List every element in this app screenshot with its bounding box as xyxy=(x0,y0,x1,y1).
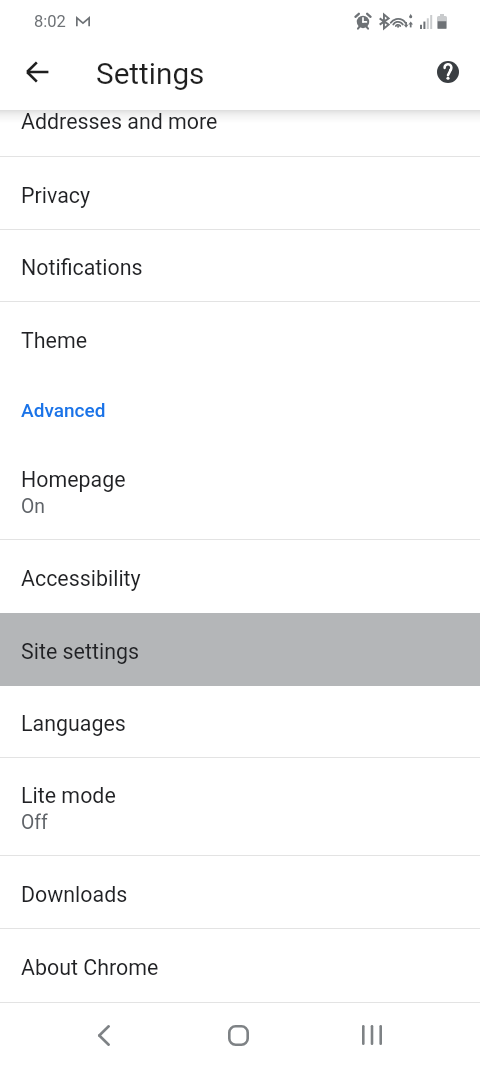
staticText: About Chrome xyxy=(21,955,159,980)
button[interactable]: Recent apps xyxy=(324,1003,420,1067)
staticText: Privacy xyxy=(21,183,91,208)
button[interactable]: Advanced xyxy=(0,374,480,442)
button[interactable]: Downloads xyxy=(0,856,480,928)
button[interactable]: About Chrome xyxy=(0,929,480,1002)
button[interactable]: Back xyxy=(13,48,61,96)
staticText: Site settings xyxy=(21,639,139,664)
staticText: Theme xyxy=(21,328,87,353)
staticText: On xyxy=(21,495,45,518)
staticText: Homepage xyxy=(21,467,126,492)
staticText: Addresses and more xyxy=(21,109,218,134)
staticText: 8:02 xyxy=(34,12,66,31)
button[interactable]: Back xyxy=(56,1003,152,1067)
staticText: Languages xyxy=(21,711,126,736)
button[interactable]: Homepage xyxy=(0,442,480,539)
button[interactable]: Addresses and more xyxy=(0,110,480,156)
button[interactable]: Accessibility xyxy=(0,540,480,613)
button[interactable]: Site settings xyxy=(0,613,480,686)
button[interactable]: Lite mode xyxy=(0,758,480,855)
button[interactable]: Theme xyxy=(0,302,480,374)
button[interactable]: Help xyxy=(424,48,472,96)
staticText: Settings xyxy=(96,56,205,91)
staticText: Notifications xyxy=(21,255,143,280)
button[interactable]: Home xyxy=(190,1003,286,1067)
staticText: Off xyxy=(21,811,48,834)
staticText: Downloads xyxy=(21,882,128,907)
button[interactable]: Languages xyxy=(0,686,480,757)
staticText: Lite mode xyxy=(21,783,116,808)
button[interactable]: Notifications xyxy=(0,230,480,301)
staticText: Accessibility xyxy=(21,566,141,591)
button[interactable]: Privacy xyxy=(0,157,480,229)
staticText: Advanced xyxy=(21,399,106,421)
